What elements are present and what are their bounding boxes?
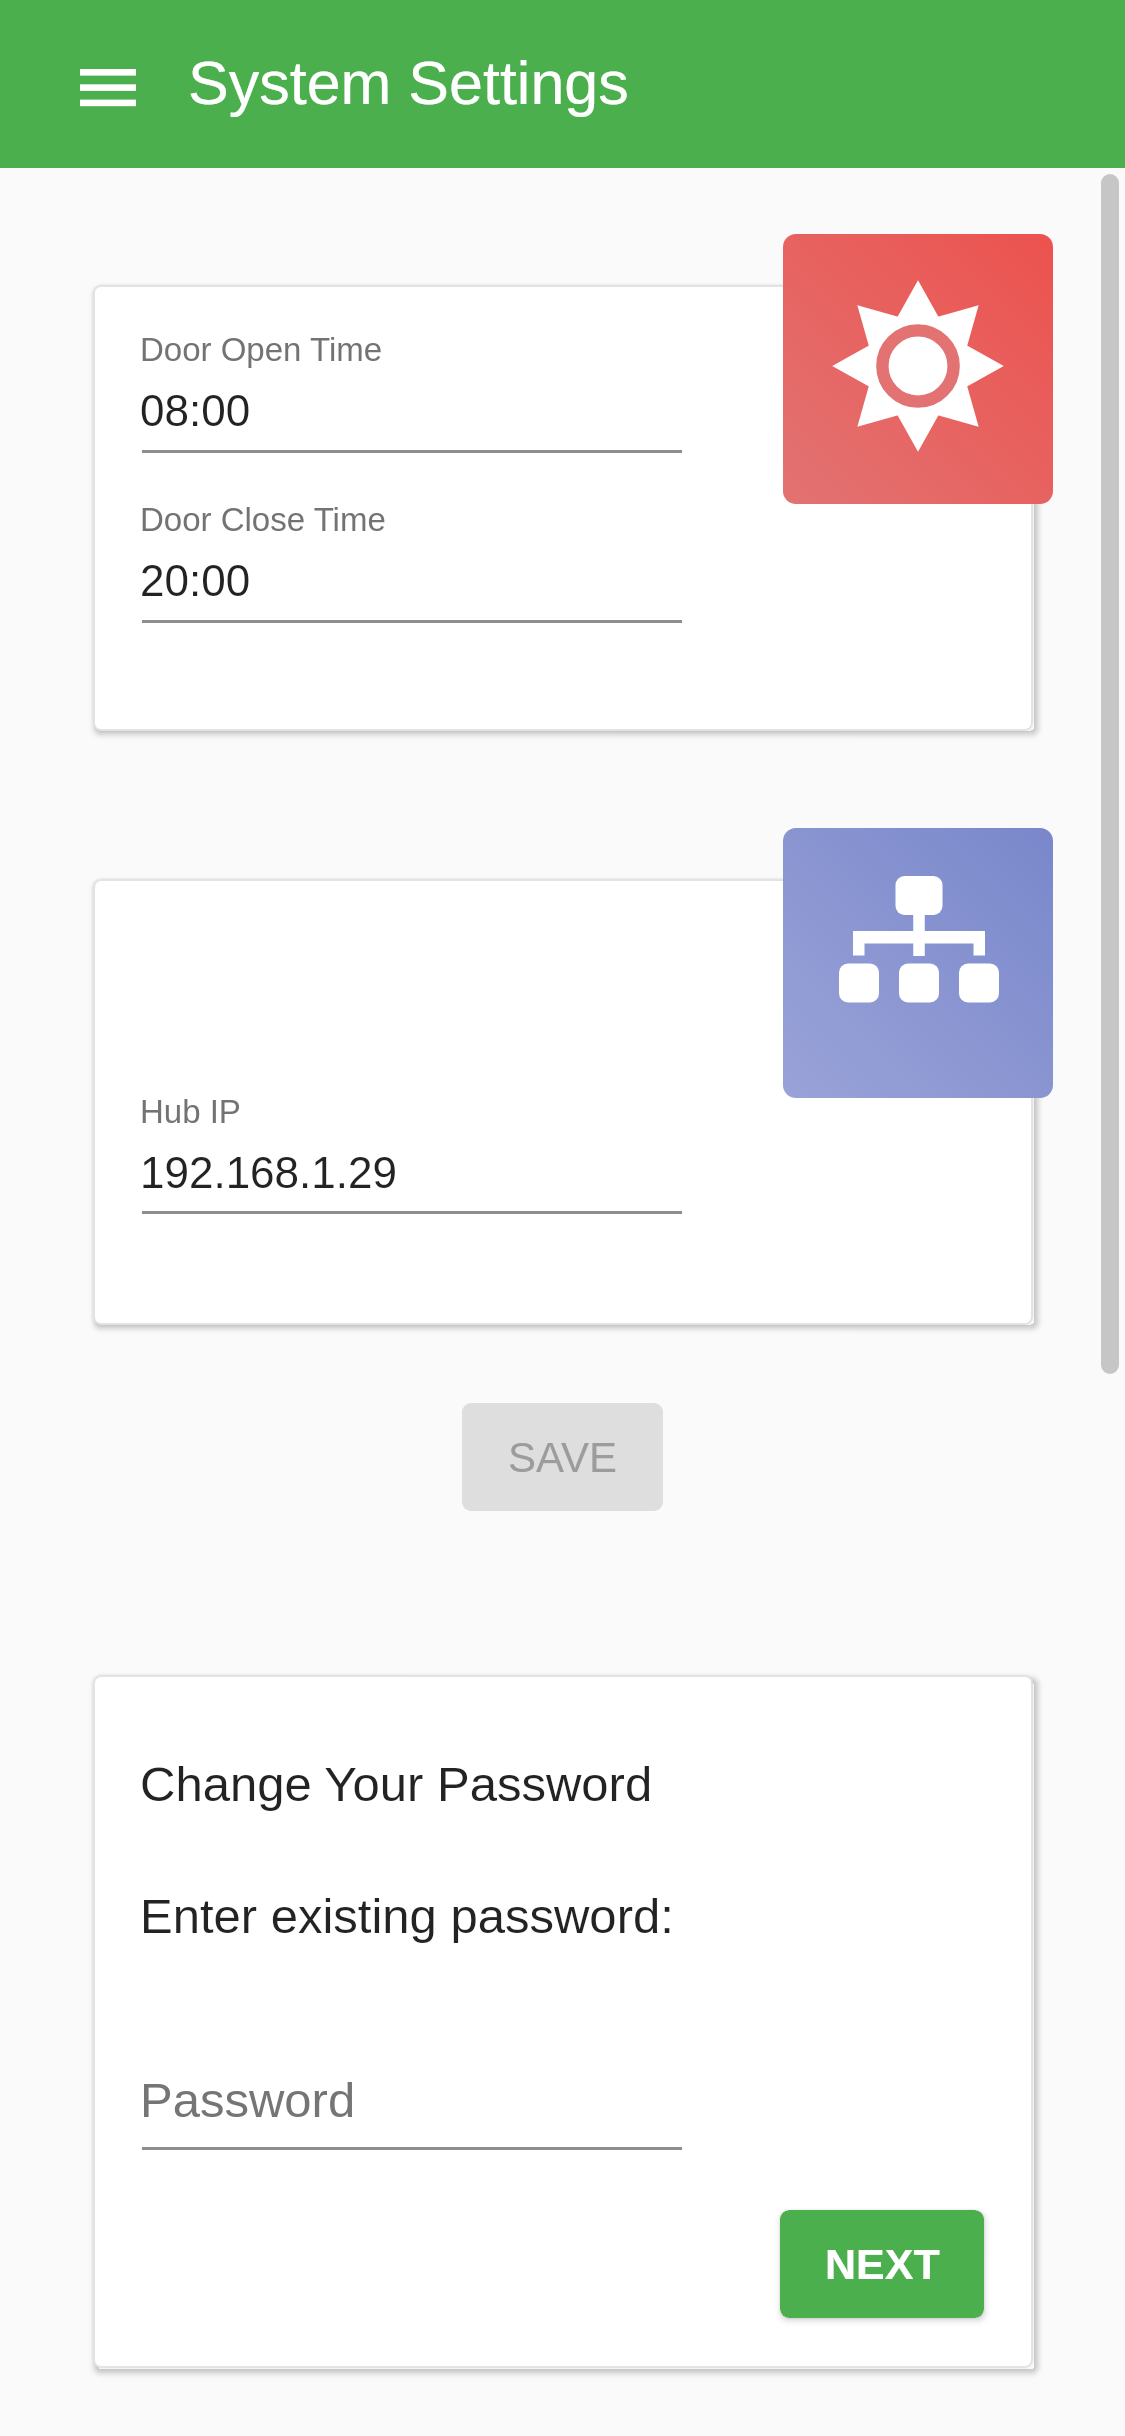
staticText: SAVE xyxy=(508,1434,617,1481)
button[interactable]: Door Open Time xyxy=(142,331,682,453)
button[interactable]: Network hub xyxy=(783,828,1053,1098)
button[interactable]: Door schedule xyxy=(783,234,1053,504)
staticText: 192.168.1.29 xyxy=(140,1148,397,1197)
staticText: Enter existing password: xyxy=(140,1889,674,1944)
staticText: Password xyxy=(140,2073,356,2128)
button[interactable]: NEXT xyxy=(780,2210,984,2318)
staticText: System Settings xyxy=(188,49,629,117)
button[interactable]: Open navigation menu xyxy=(52,42,164,134)
staticText: NEXT xyxy=(825,2240,940,2288)
staticText: 20:00 xyxy=(140,556,251,605)
staticText: Change Your Password xyxy=(140,1757,653,1812)
button[interactable]: Door Close Time xyxy=(142,501,682,623)
staticText: Hub IP xyxy=(140,1093,241,1130)
button[interactable]: SAVE xyxy=(462,1403,663,1511)
staticText: Door Open Time xyxy=(140,331,383,368)
staticText: Door Close Time xyxy=(140,501,386,538)
staticText: 08:00 xyxy=(140,386,251,435)
button[interactable]: Password xyxy=(142,2060,682,2150)
button[interactable]: Hub IP xyxy=(142,1093,682,1214)
